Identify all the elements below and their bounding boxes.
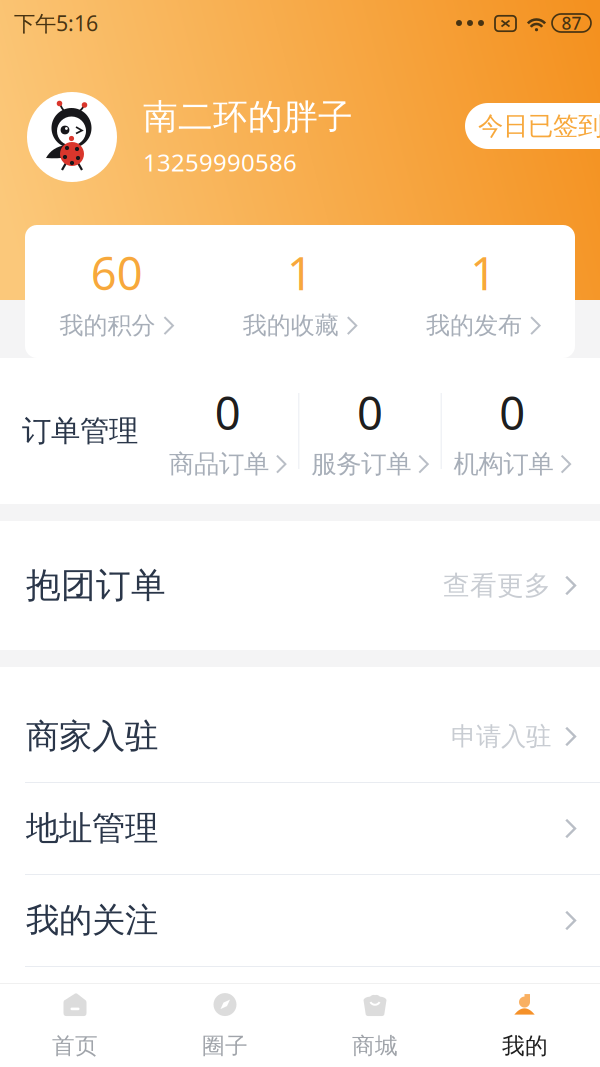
- staticText: 下午5:16: [14, 9, 98, 37]
- staticText: 60: [91, 243, 143, 303]
- staticText: 抱团订单: [26, 564, 166, 607]
- staticText: 查看更多: [443, 569, 551, 602]
- staticText: 地址管理: [26, 808, 158, 849]
- staticText: 南二环的胖子: [143, 96, 353, 138]
- button[interactable]: 圈子: [150, 977, 300, 1067]
- staticText: 87: [561, 11, 581, 34]
- button[interactable]: 0: [299, 382, 441, 480]
- staticText: 机构订单: [454, 448, 554, 480]
- button[interactable]: 商城: [300, 977, 450, 1067]
- button[interactable]: 我的足迹: [0, 967, 600, 1058]
- button[interactable]: 商家入驻: [0, 691, 600, 782]
- button[interactable]: 今日已签到: [465, 103, 600, 149]
- staticText: 服务订单: [311, 448, 411, 480]
- staticText: 1: [287, 243, 313, 303]
- staticText: 我的收藏: [243, 311, 339, 340]
- button[interactable]: 首页: [0, 977, 150, 1067]
- staticText: 0: [215, 382, 241, 442]
- staticText: 商家入驻: [26, 716, 158, 757]
- button[interactable]: 抱团订单: [0, 521, 600, 650]
- staticText: 1: [470, 243, 496, 303]
- button[interactable]: 0: [157, 382, 298, 480]
- staticText: 圈子: [202, 1032, 248, 1060]
- staticText: 我的关注: [26, 900, 158, 941]
- staticText: 我的积分: [59, 311, 155, 340]
- staticText: 0: [357, 382, 383, 442]
- staticText: 首页: [52, 1032, 98, 1060]
- staticText: 今日已签到: [478, 110, 600, 141]
- button[interactable]: 我的关注: [0, 875, 600, 966]
- staticText: 我的足迹: [26, 992, 158, 1033]
- staticText: 申请入驻: [451, 721, 551, 752]
- staticText: 13259990586: [143, 146, 297, 178]
- button[interactable]: 60: [25, 243, 208, 340]
- staticText: 我的发布: [426, 311, 522, 340]
- button[interactable]: 我的: [450, 977, 600, 1067]
- button[interactable]: 1: [208, 243, 392, 340]
- staticText: 我的: [502, 1032, 548, 1060]
- button[interactable]: 地址管理: [0, 783, 600, 874]
- staticText: 商品订单: [169, 448, 269, 480]
- staticText: 商城: [352, 1032, 398, 1060]
- staticText: 订单管理: [22, 413, 138, 449]
- button[interactable]: 0: [442, 382, 583, 480]
- staticText: 0: [499, 382, 525, 442]
- button[interactable]: 1: [392, 243, 575, 340]
